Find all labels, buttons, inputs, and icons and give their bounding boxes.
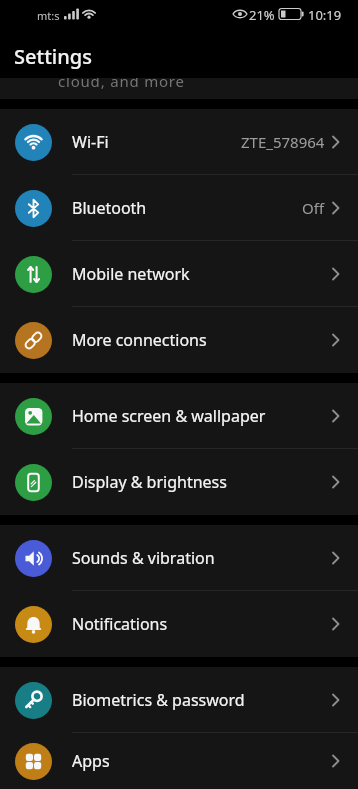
button[interactable]: Apps xyxy=(0,733,358,789)
staticText: Sounds & vibration xyxy=(72,547,215,569)
button[interactable]: Mobile network xyxy=(0,241,358,307)
button[interactable]: Display & brightness xyxy=(0,449,358,515)
button[interactable]: Biometrics & password xyxy=(0,667,358,733)
staticText: mt:s xyxy=(37,8,60,23)
button[interactable]: Wi-Fi xyxy=(0,109,358,175)
staticText: More connections xyxy=(72,329,207,351)
staticText: Biometrics & password xyxy=(72,689,245,711)
button[interactable]: Notifications xyxy=(0,591,358,657)
staticText: 10:19 xyxy=(308,6,342,24)
staticText: Display & brightness xyxy=(72,471,227,493)
staticText: Home screen & wallpaper xyxy=(72,405,266,427)
staticText: Mobile network xyxy=(72,263,190,285)
button[interactable]: Home screen & wallpaper xyxy=(0,383,358,449)
button[interactable]: Sounds & vibration xyxy=(0,525,358,591)
staticText: Bluetooth xyxy=(72,197,147,219)
staticText: ZTE_578964 xyxy=(241,132,325,152)
button[interactable]: More connections xyxy=(0,307,358,373)
staticText: Apps xyxy=(72,750,110,772)
button[interactable]: Bluetooth xyxy=(0,175,358,241)
staticText: Wi-Fi xyxy=(72,131,109,153)
staticText: cloud, and more xyxy=(58,78,185,91)
staticText: Settings xyxy=(14,43,92,70)
staticText: Notifications xyxy=(72,613,168,635)
staticText: 21% xyxy=(249,6,275,24)
staticText: Off xyxy=(302,198,325,218)
